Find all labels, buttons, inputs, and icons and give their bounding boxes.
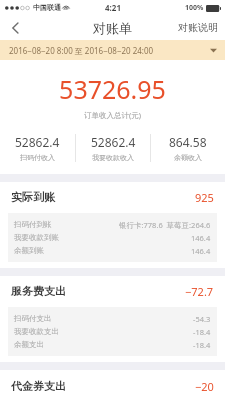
button[interactable]: 对账说明 — [171, 16, 225, 39]
button[interactable]: 服务费支出 — [0, 276, 225, 307]
staticText: 扫码付支出 — [14, 314, 52, 323]
staticText: 864.58 — [169, 134, 207, 150]
staticText: -54.3 — [193, 314, 211, 324]
staticText: 4:21 — [105, 2, 121, 13]
staticText: 实际到账 — [11, 190, 55, 204]
staticText: 对账说明 — [178, 21, 218, 34]
staticText: 扫码付到账 — [14, 220, 52, 229]
staticText: 53726.95 — [0, 72, 225, 106]
staticText: 扫码付收入 — [20, 153, 55, 162]
staticText: 银行卡:778.6 草莓豆:264.6 — [119, 220, 211, 230]
staticText: 服务费支出 — [11, 284, 66, 298]
staticText: 我要收款到账 — [14, 233, 59, 242]
staticText: 52862.4 — [91, 134, 136, 150]
button[interactable]: 实际到账 — [0, 182, 225, 213]
staticText: -18.4 — [193, 327, 211, 337]
staticText: −20 — [195, 379, 214, 391]
button[interactable]: 52862.4 — [76, 134, 150, 162]
staticText: 146.4 — [191, 233, 211, 243]
staticText: 2016−08−20 8:00 至 2016−08−20 24:00 — [9, 45, 154, 56]
staticText: 我要收款支出 — [14, 327, 59, 336]
staticText: 中国联通 — [33, 3, 61, 12]
staticText: 我要收款收入 — [92, 153, 134, 162]
staticText: 100% — [185, 3, 204, 13]
button[interactable]: Back — [0, 15, 30, 40]
staticText: 925 — [195, 190, 214, 205]
staticText: 对账单 — [93, 20, 132, 36]
staticText: 余额收入 — [174, 153, 202, 162]
button[interactable]: 52862.4 — [0, 134, 75, 162]
staticText: 代金券支出 — [11, 379, 66, 391]
staticText: 余额到账 — [14, 246, 44, 255]
staticText: −72.7 — [185, 284, 214, 299]
staticText: -18.4 — [193, 340, 211, 350]
staticText: 订单收入总计(元) — [0, 110, 225, 120]
button[interactable]: 代金券支出 — [0, 370, 225, 400]
staticText: 52862.4 — [15, 134, 60, 150]
staticText: 余额支出 — [14, 340, 44, 349]
button[interactable]: 2016−08−20 8:00 至 2016−08−20 24:00 — [0, 40, 225, 60]
button[interactable]: 864.58 — [151, 134, 225, 162]
staticText: 146.4 — [191, 246, 211, 256]
